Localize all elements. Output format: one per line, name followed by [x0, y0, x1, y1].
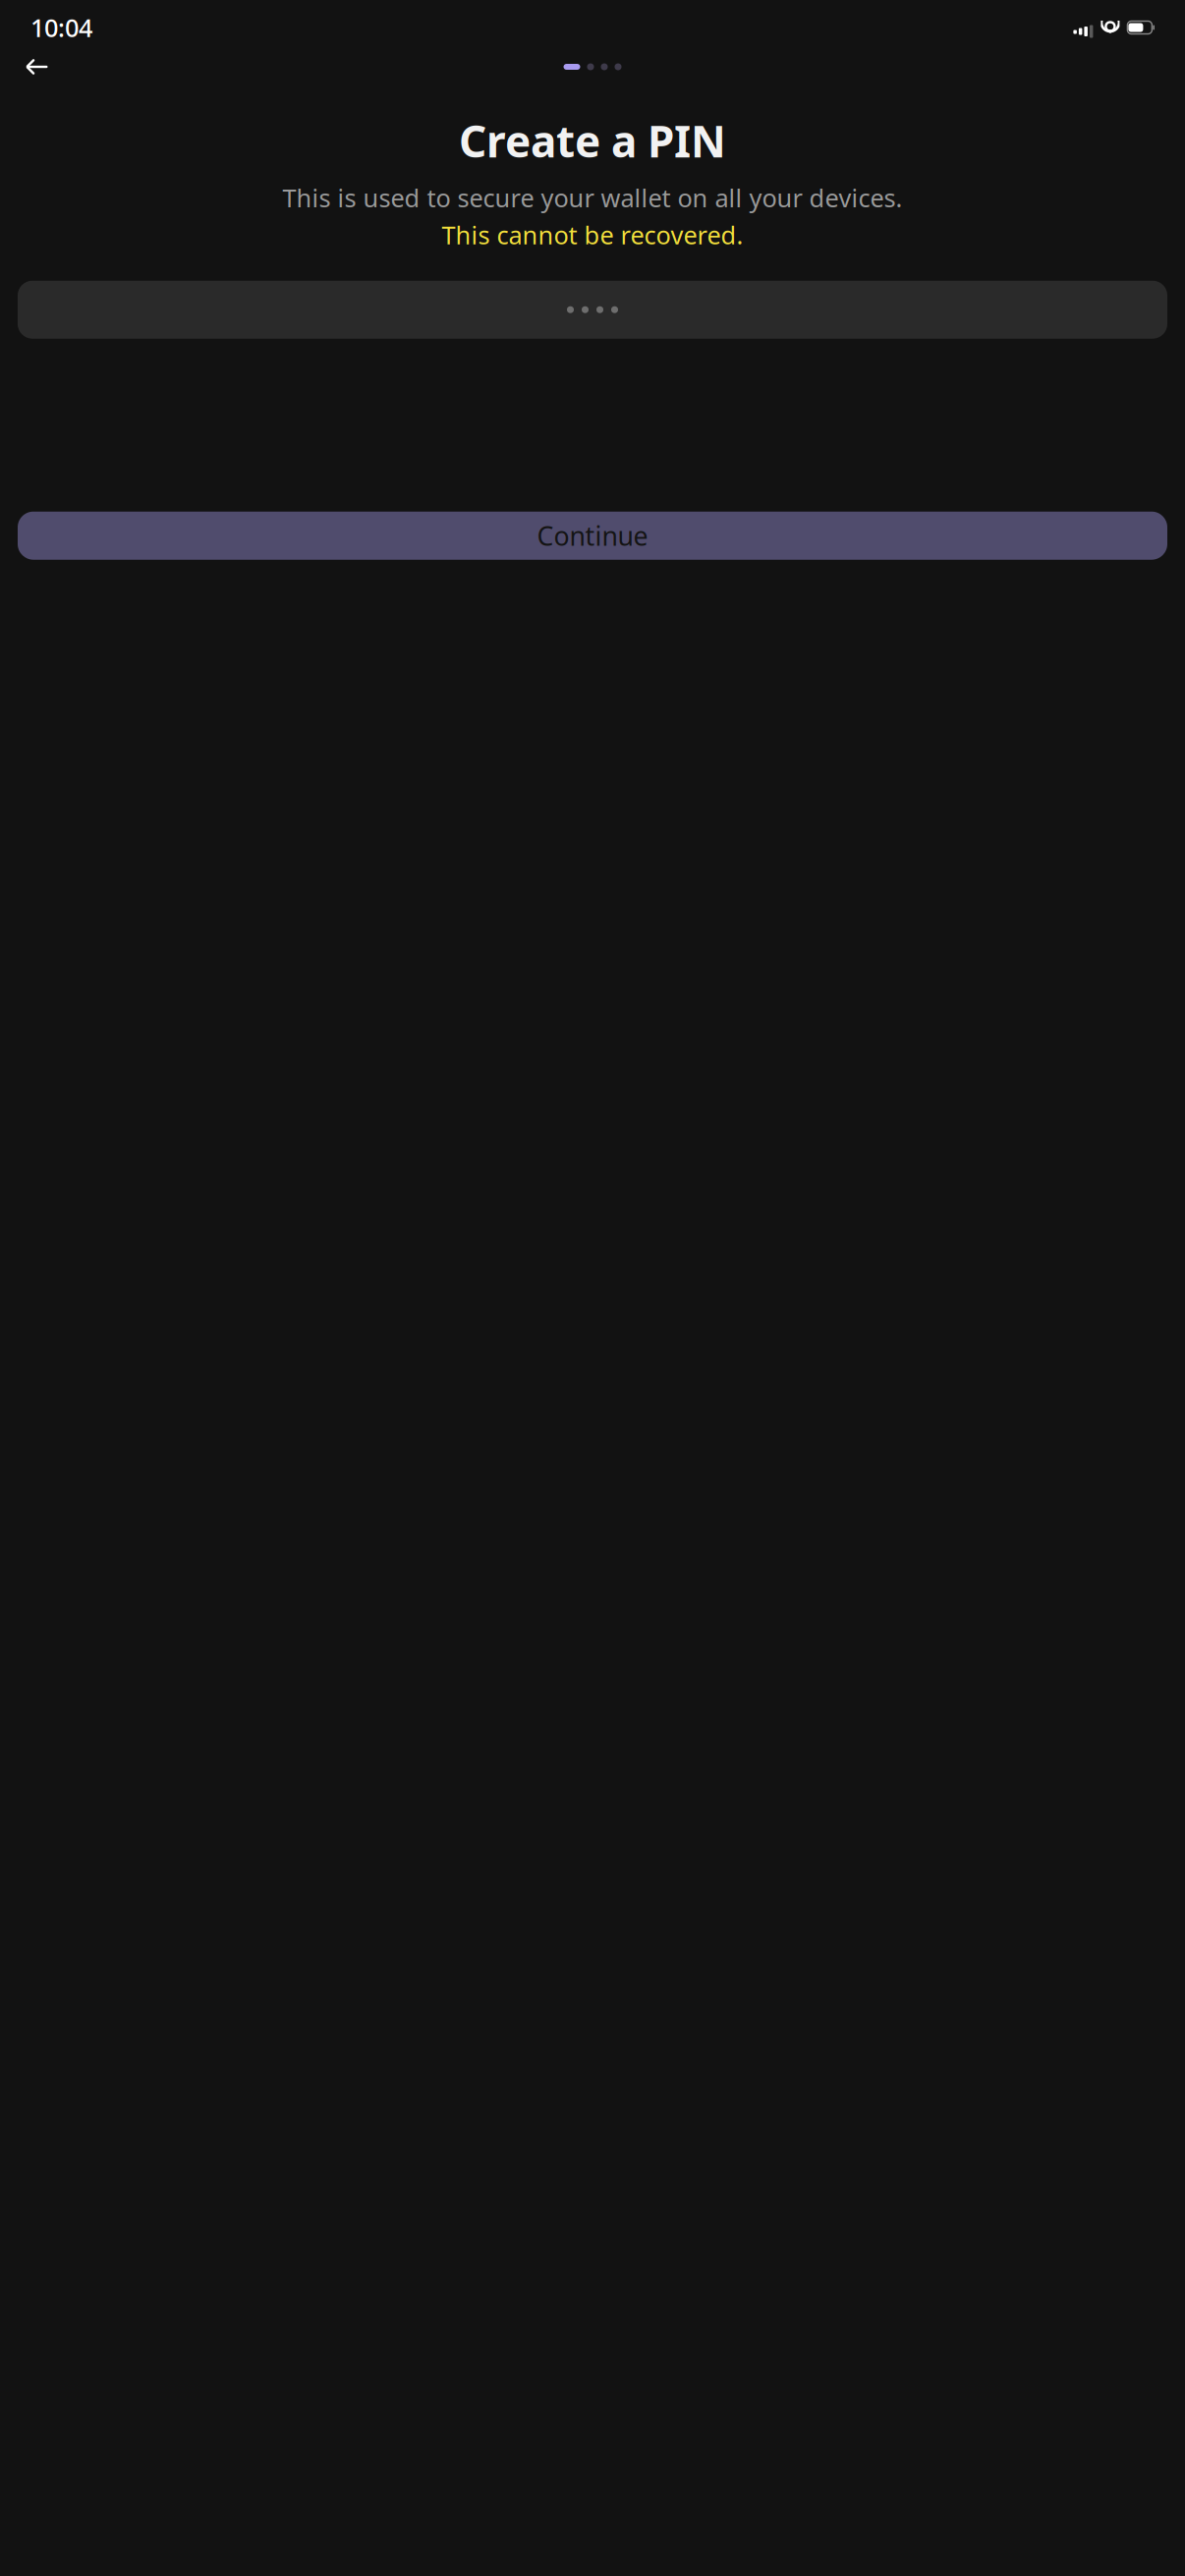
staticText: This cannot be recovered. — [442, 218, 743, 251]
staticText: This is used to secure your wallet on al… — [282, 181, 903, 214]
staticText: 10:04 — [30, 11, 92, 44]
staticText: Create a PIN — [459, 112, 726, 169]
staticText: Continue — [537, 518, 648, 553]
button[interactable]: Continue — [18, 512, 1167, 560]
button[interactable]: PIN entry field — [18, 281, 1167, 339]
button[interactable]: Back — [16, 45, 59, 88]
